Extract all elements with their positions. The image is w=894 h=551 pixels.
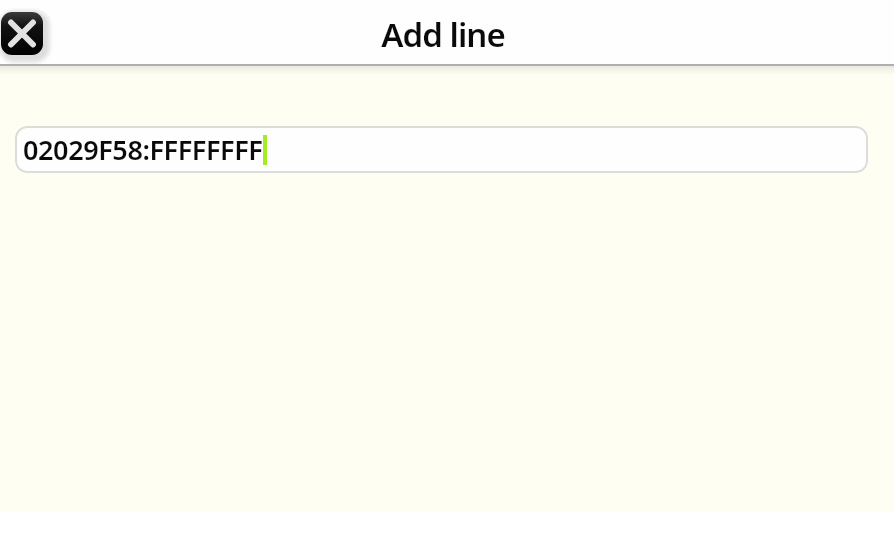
- button[interactable]: 02029F58:FFFFFFFF: [15, 126, 868, 173]
- staticText: Add line: [381, 12, 505, 57]
- staticText: 02029F58:FFFFFFFF: [23, 131, 263, 168]
- button[interactable]: Close: [0, 6, 49, 61]
